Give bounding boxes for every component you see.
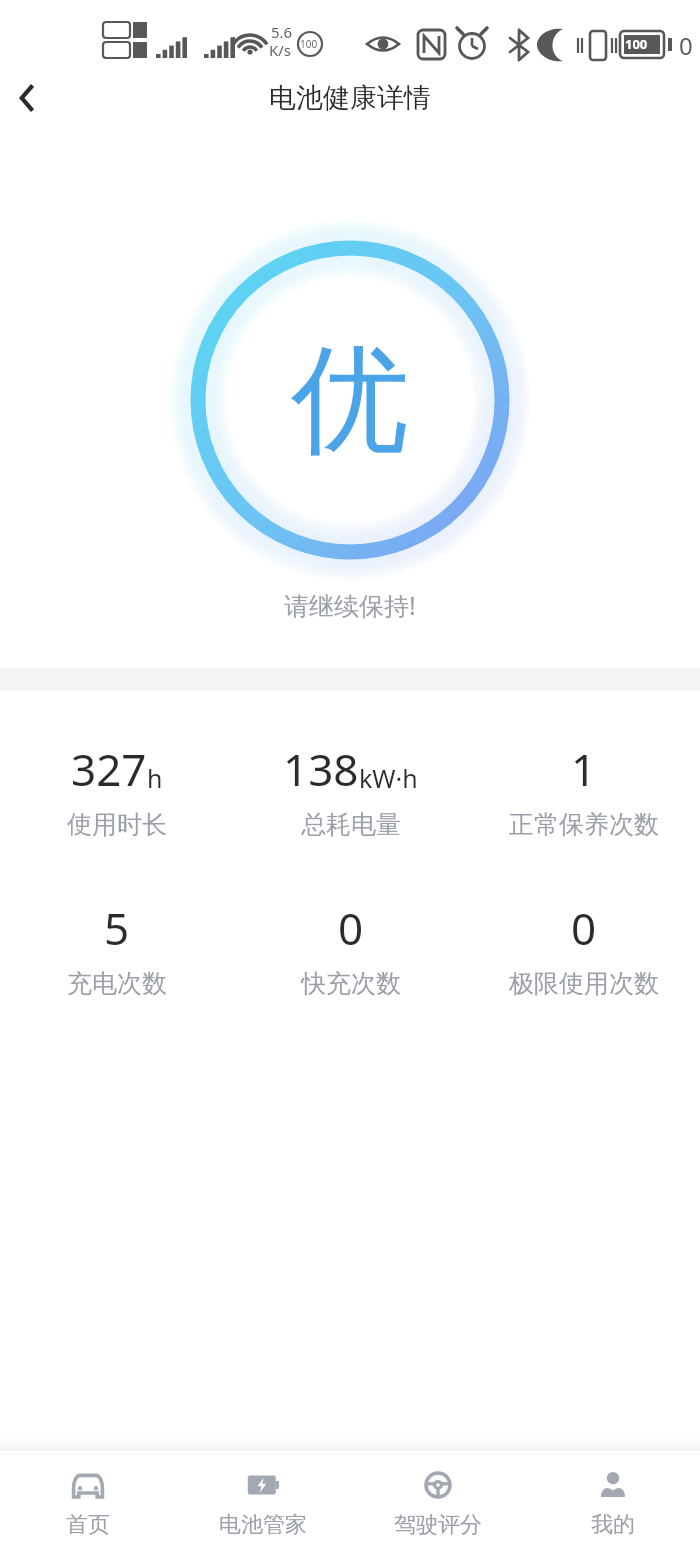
staticText: 138 bbox=[283, 739, 359, 799]
staticText: h bbox=[147, 761, 163, 795]
button[interactable]: 驾驶评分 bbox=[350, 1451, 525, 1555]
staticText: 请继续保持! bbox=[284, 588, 416, 622]
button[interactable]: Back bbox=[0, 71, 54, 125]
staticText: 优 bbox=[291, 326, 409, 475]
button[interactable]: 电池管家 bbox=[175, 1451, 350, 1555]
button[interactable]: 首页 bbox=[0, 1451, 175, 1555]
staticText: kW·h bbox=[359, 761, 418, 795]
staticText: 100 bbox=[625, 35, 648, 53]
staticText: 01:09 bbox=[679, 29, 700, 68]
staticText: 电池管家 bbox=[219, 1511, 307, 1539]
staticText: 使用时长 bbox=[67, 809, 167, 840]
staticText: 正常保养次数 bbox=[509, 809, 659, 840]
staticText: 总耗电量 bbox=[301, 809, 401, 840]
staticText: 0 bbox=[571, 898, 597, 958]
staticText: 驾驶评分 bbox=[394, 1511, 482, 1539]
staticText: 我的 bbox=[591, 1511, 635, 1539]
staticText: 快充次数 bbox=[301, 968, 401, 999]
staticText: 5.6 bbox=[271, 22, 293, 42]
staticText: 0 bbox=[338, 898, 364, 958]
staticText: 100 bbox=[300, 37, 318, 51]
staticText: 5 bbox=[104, 898, 130, 958]
staticText: 电池健康详情 bbox=[269, 81, 431, 115]
button[interactable]: 我的 bbox=[525, 1451, 700, 1555]
staticText: 1 bbox=[571, 739, 597, 799]
staticText: 充电次数 bbox=[67, 968, 167, 999]
staticText: 327 bbox=[71, 739, 147, 799]
staticText: 首页 bbox=[66, 1511, 110, 1539]
staticText: K/s bbox=[269, 40, 292, 60]
staticText: 极限使用次数 bbox=[509, 968, 659, 999]
